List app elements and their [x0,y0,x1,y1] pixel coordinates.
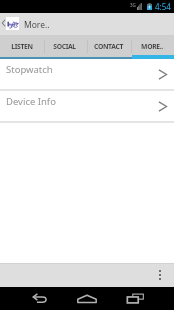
button[interactable]: LISTEN [0,35,43,59]
button[interactable]: Up [0,13,19,35]
button[interactable]: Home [63,287,111,310]
staticText: 4:54 [155,1,171,12]
staticText: 3G [130,2,136,8]
staticText: MORE.. [141,42,163,51]
staticText: Stopwatch [6,63,53,76]
button[interactable]: SOCIAL [43,35,86,59]
button[interactable]: Device Info [0,91,174,123]
staticText: Device Info [6,95,56,108]
staticText: SOCIAL [53,42,76,51]
button[interactable]: Stopwatch [0,59,174,91]
staticText: LISTEN [11,42,33,51]
button[interactable]: More options [146,263,174,287]
button[interactable]: Back [15,287,63,310]
button[interactable]: CONTACT [86,35,130,59]
button[interactable]: MORE.. [130,35,174,59]
staticText: More.. [24,19,50,31]
staticText: CONTACT [94,42,123,51]
button[interactable]: Recent apps [111,287,159,310]
